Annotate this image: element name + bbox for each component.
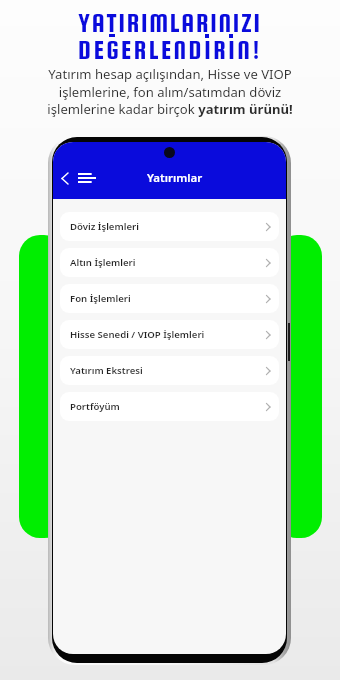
staticText: Portföyüm (70, 400, 120, 413)
button[interactable]: Back (56, 169, 74, 187)
button[interactable]: Portföyüm (60, 392, 279, 421)
staticText: Döviz İşlemleri (70, 220, 139, 233)
staticText: Altın İşlemleri (70, 256, 136, 269)
staticText: YATIRIMLARINIZI (78, 9, 262, 38)
staticText: Yatırım Ekstresi (70, 364, 143, 377)
button[interactable]: Menu (78, 169, 98, 187)
staticText: Fon İşlemleri (70, 292, 131, 305)
button[interactable]: Döviz İşlemleri (60, 212, 279, 241)
button[interactable]: Yatırım Ekstresi (60, 356, 279, 385)
staticText: Yatırımlar (147, 170, 203, 186)
button[interactable]: Fon İşlemleri (60, 284, 279, 313)
staticText: Hisse Senedi / VIOP İşlemleri (70, 328, 205, 341)
staticText: Yatırım hesap açılışından, Hisse ve VIOP… (47, 65, 293, 117)
button[interactable]: Altın İşlemleri (60, 248, 279, 277)
staticText: DEGERLENDIRIN! (78, 36, 262, 65)
button[interactable]: Hisse Senedi / VIOP İşlemleri (60, 320, 279, 349)
